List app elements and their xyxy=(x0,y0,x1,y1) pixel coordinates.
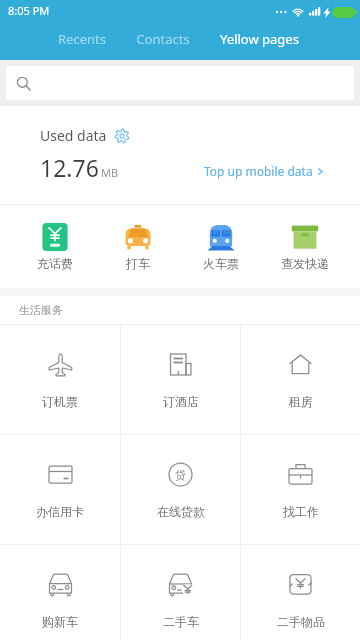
staticText: 二手物品 xyxy=(277,614,325,629)
button[interactable]: 订机票 xyxy=(0,325,120,434)
staticText: MB xyxy=(101,165,119,180)
button[interactable]: Contacts xyxy=(121,24,205,60)
button[interactable]: 租房 xyxy=(241,325,360,434)
button[interactable]: 购新车 xyxy=(0,545,120,640)
staticText: 生活服务 xyxy=(19,303,63,317)
button[interactable]: 二手物品 xyxy=(241,545,360,640)
staticText: 找工作 xyxy=(283,504,319,519)
button[interactable]: 打车 xyxy=(96,205,179,288)
button[interactable]: 查发快递 xyxy=(263,205,347,288)
staticText: Top up mobile data xyxy=(204,163,313,179)
button[interactable]: Recents xyxy=(43,24,121,60)
button[interactable]: 找工作 xyxy=(241,435,360,544)
staticText: 二手车 xyxy=(163,614,199,629)
button[interactable]: Top up mobile data xyxy=(204,163,324,183)
button[interactable]: Yellow pages xyxy=(205,24,314,60)
staticText: 8:05 PM xyxy=(8,3,50,18)
button[interactable]: 订酒店 xyxy=(121,325,240,434)
button[interactable]: Settings xyxy=(114,128,130,144)
staticText: 订酒店 xyxy=(163,394,199,409)
staticText: Contacts xyxy=(136,30,190,48)
button[interactable]: 充话费 xyxy=(13,205,96,288)
staticText: 打车 xyxy=(126,256,150,271)
staticText: 贷 xyxy=(175,468,186,482)
staticText: 租房 xyxy=(289,394,313,409)
staticText: 购新车 xyxy=(42,614,78,629)
staticText: 查发快递 xyxy=(281,256,329,271)
staticText: 火车票 xyxy=(203,256,239,271)
button[interactable]: 办信用卡 xyxy=(0,435,120,544)
staticText: 办信用卡 xyxy=(36,504,84,519)
staticText: Used data xyxy=(40,126,107,145)
staticText: Yellow pages xyxy=(220,30,299,48)
button[interactable]: Search xyxy=(6,66,354,100)
staticText: 12.76 xyxy=(40,152,99,183)
staticText: Recents xyxy=(58,30,106,48)
button[interactable]: 火车票 xyxy=(179,205,263,288)
staticText: 在线贷款 xyxy=(157,504,205,519)
staticText: 充话费 xyxy=(37,256,73,271)
staticText: 订机票 xyxy=(42,394,78,409)
button[interactable]: 贷 xyxy=(121,435,240,544)
button[interactable]: 二手车 xyxy=(121,545,240,640)
